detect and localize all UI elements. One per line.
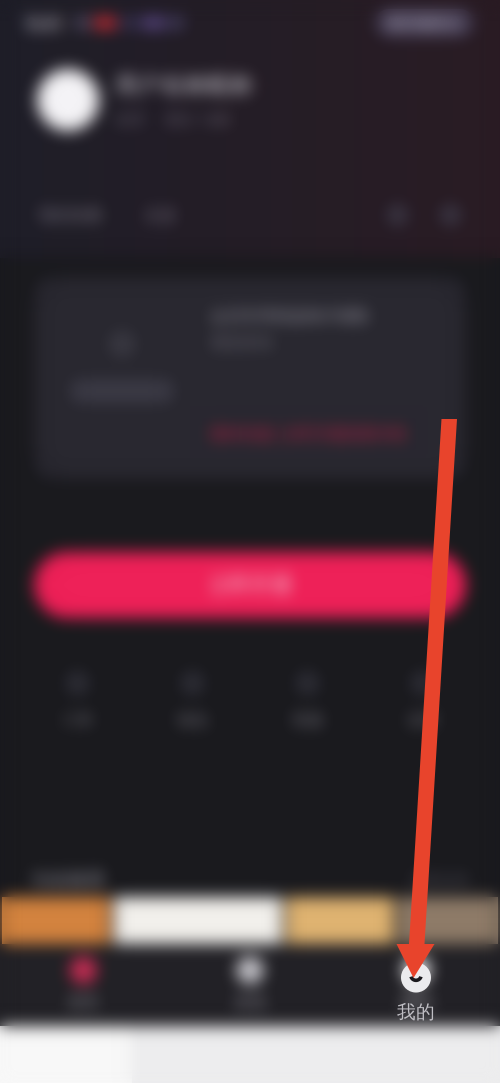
staticText: 用户名称昵称 (115, 71, 253, 99)
button[interactable]: 我的收藏 (38, 205, 102, 225)
staticText: 我的 (397, 1000, 435, 1023)
staticText: 客服 (291, 710, 323, 730)
staticText: 为你推荐 (30, 868, 106, 891)
button[interactable]: 我的 (333, 956, 500, 1012)
staticText: 订单 (61, 710, 93, 730)
staticText: 立即开通 (208, 572, 292, 598)
staticText: 9:41 (26, 11, 64, 35)
staticText: 查看全部 (410, 871, 470, 889)
staticText: 发现 (234, 992, 266, 1012)
button[interactable]: 客服 (250, 670, 365, 730)
button[interactable]: 会员专享权益每月领取 (34, 277, 466, 479)
button[interactable]: 设置 (365, 670, 480, 730)
button[interactable]: Settings (439, 203, 462, 226)
staticText: 设置 (406, 710, 438, 730)
button[interactable]: 签到领积分 (375, 9, 474, 37)
button[interactable]: 发现 (167, 956, 333, 1012)
button[interactable]: Scan (386, 203, 409, 226)
button[interactable]: 立即开通 (34, 552, 466, 618)
button[interactable]: 我的 (397, 962, 435, 1023)
staticText: 限时特惠 立即开通查看详情 (210, 424, 407, 444)
button[interactable]: 订单 (20, 670, 135, 730)
staticText: 首页 (67, 992, 99, 1012)
button[interactable]: 首页 (0, 956, 167, 1012)
staticText: 签到领积分 (387, 14, 462, 32)
button[interactable]: 用户名称昵称 (0, 65, 500, 135)
button[interactable]: 钱包 (135, 670, 250, 730)
staticText: 会员专享权益每月领取 (210, 306, 370, 326)
staticText: 钱包 (176, 710, 208, 730)
button[interactable]: 查看全部 (410, 871, 470, 889)
button[interactable]: 足迹 (144, 205, 176, 225)
staticText: 足迹 (144, 205, 176, 225)
staticText: 我的收藏 (38, 205, 102, 225)
staticText: 我的 (401, 992, 433, 1012)
